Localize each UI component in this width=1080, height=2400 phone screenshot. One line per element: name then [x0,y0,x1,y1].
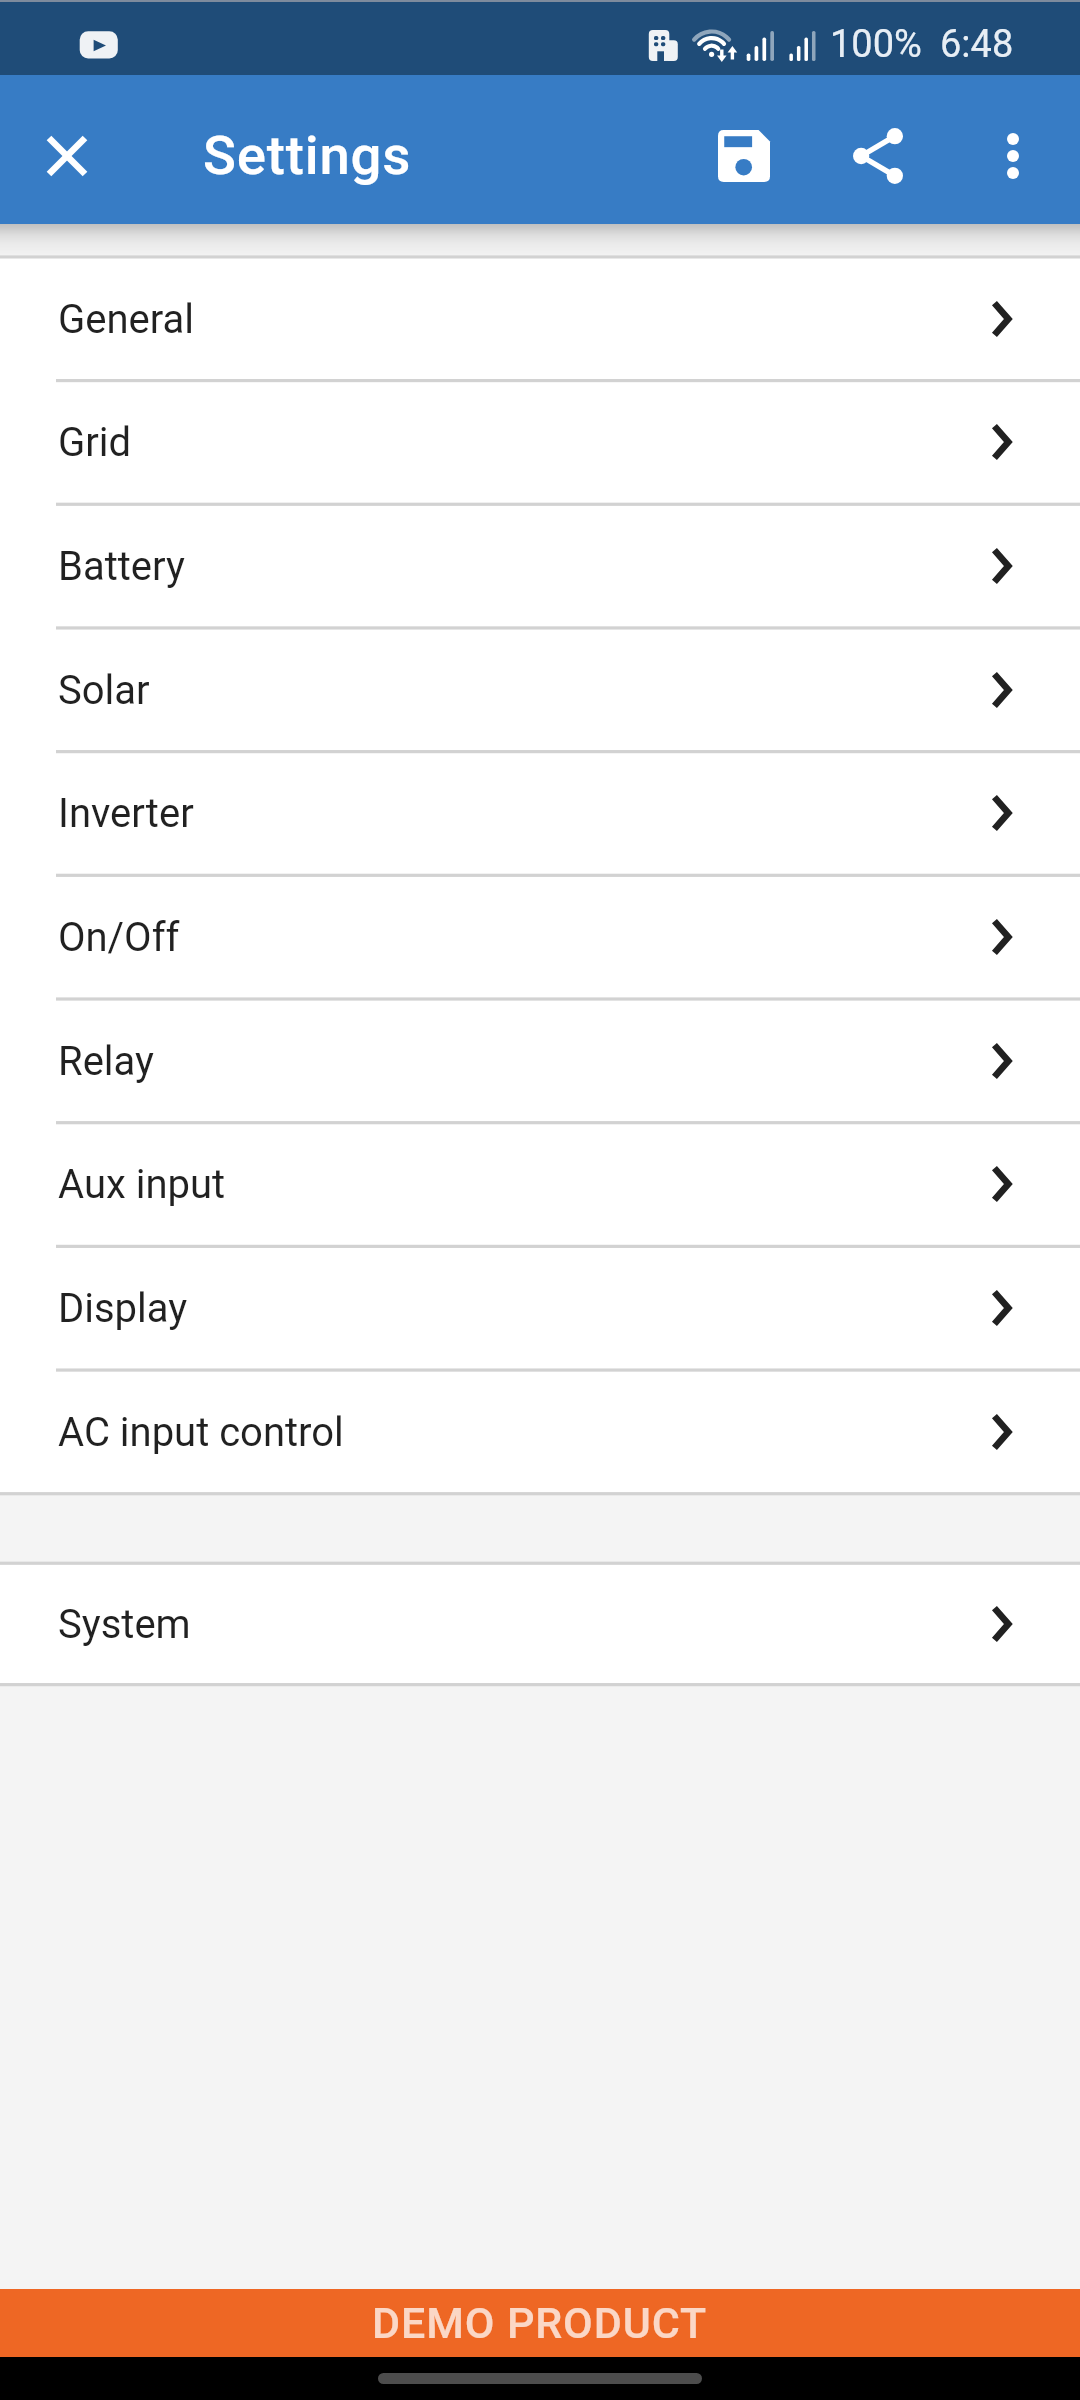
button[interactable]: On/Off [0,877,1080,997]
button[interactable]: Save [677,87,811,224]
button[interactable]: AC input control [0,1372,1080,1492]
button[interactable]: More options [945,87,1080,224]
button[interactable]: Display [0,1248,1080,1368]
button[interactable]: Share [811,87,945,224]
staticText: System [58,1601,191,1648]
staticText: Relay [58,1038,154,1085]
staticText: General [58,296,195,343]
staticText: On/Off [58,914,180,961]
staticText: DEMO PRODUCT [372,2298,708,2348]
staticText: Settings [203,123,412,187]
staticText: Solar [58,667,150,714]
staticText: Aux input [58,1161,226,1208]
staticText: Battery [58,543,185,590]
staticText: Grid [58,419,132,466]
staticText: Inverter [58,790,194,837]
button[interactable]: General [0,259,1080,379]
staticText: 6:48 [940,22,1014,67]
staticText: 100% [830,22,922,67]
button[interactable]: Grid [0,382,1080,502]
button[interactable]: Inverter [0,753,1080,873]
button[interactable]: Close [20,109,114,203]
staticText: AC input control [58,1409,344,1456]
button[interactable]: Solar [0,630,1080,750]
staticText: Display [58,1285,188,1332]
button[interactable]: Relay [0,1001,1080,1121]
button[interactable]: Battery [0,506,1080,626]
button[interactable]: System [0,1565,1080,1683]
button[interactable]: Aux input [0,1124,1080,1244]
